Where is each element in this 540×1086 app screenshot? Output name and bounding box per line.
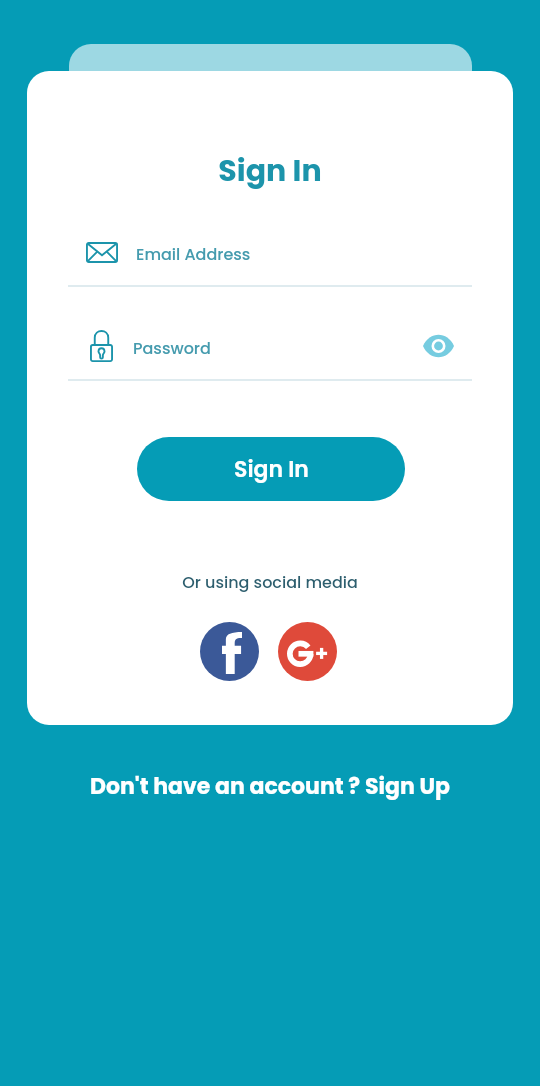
staticText: Sign In	[27, 150, 513, 192]
button[interactable]: Password	[68, 325, 472, 381]
button[interactable]: Sign In	[137, 437, 405, 501]
staticText: Don't have an account ?	[90, 771, 365, 802]
button[interactable]: Don't have an account ?	[90, 771, 450, 802]
button[interactable]: Sign in with Facebook	[200, 622, 259, 681]
staticText: Or using social media	[27, 571, 513, 593]
button[interactable]: Sign in with Google	[278, 622, 337, 681]
staticText: Email Address	[136, 243, 251, 265]
button[interactable]: Show password	[416, 324, 460, 368]
button[interactable]: Email Address	[68, 231, 472, 287]
staticText: Password	[133, 337, 211, 359]
staticText: Sign In	[234, 454, 309, 485]
staticText: Sign Up	[365, 771, 450, 802]
